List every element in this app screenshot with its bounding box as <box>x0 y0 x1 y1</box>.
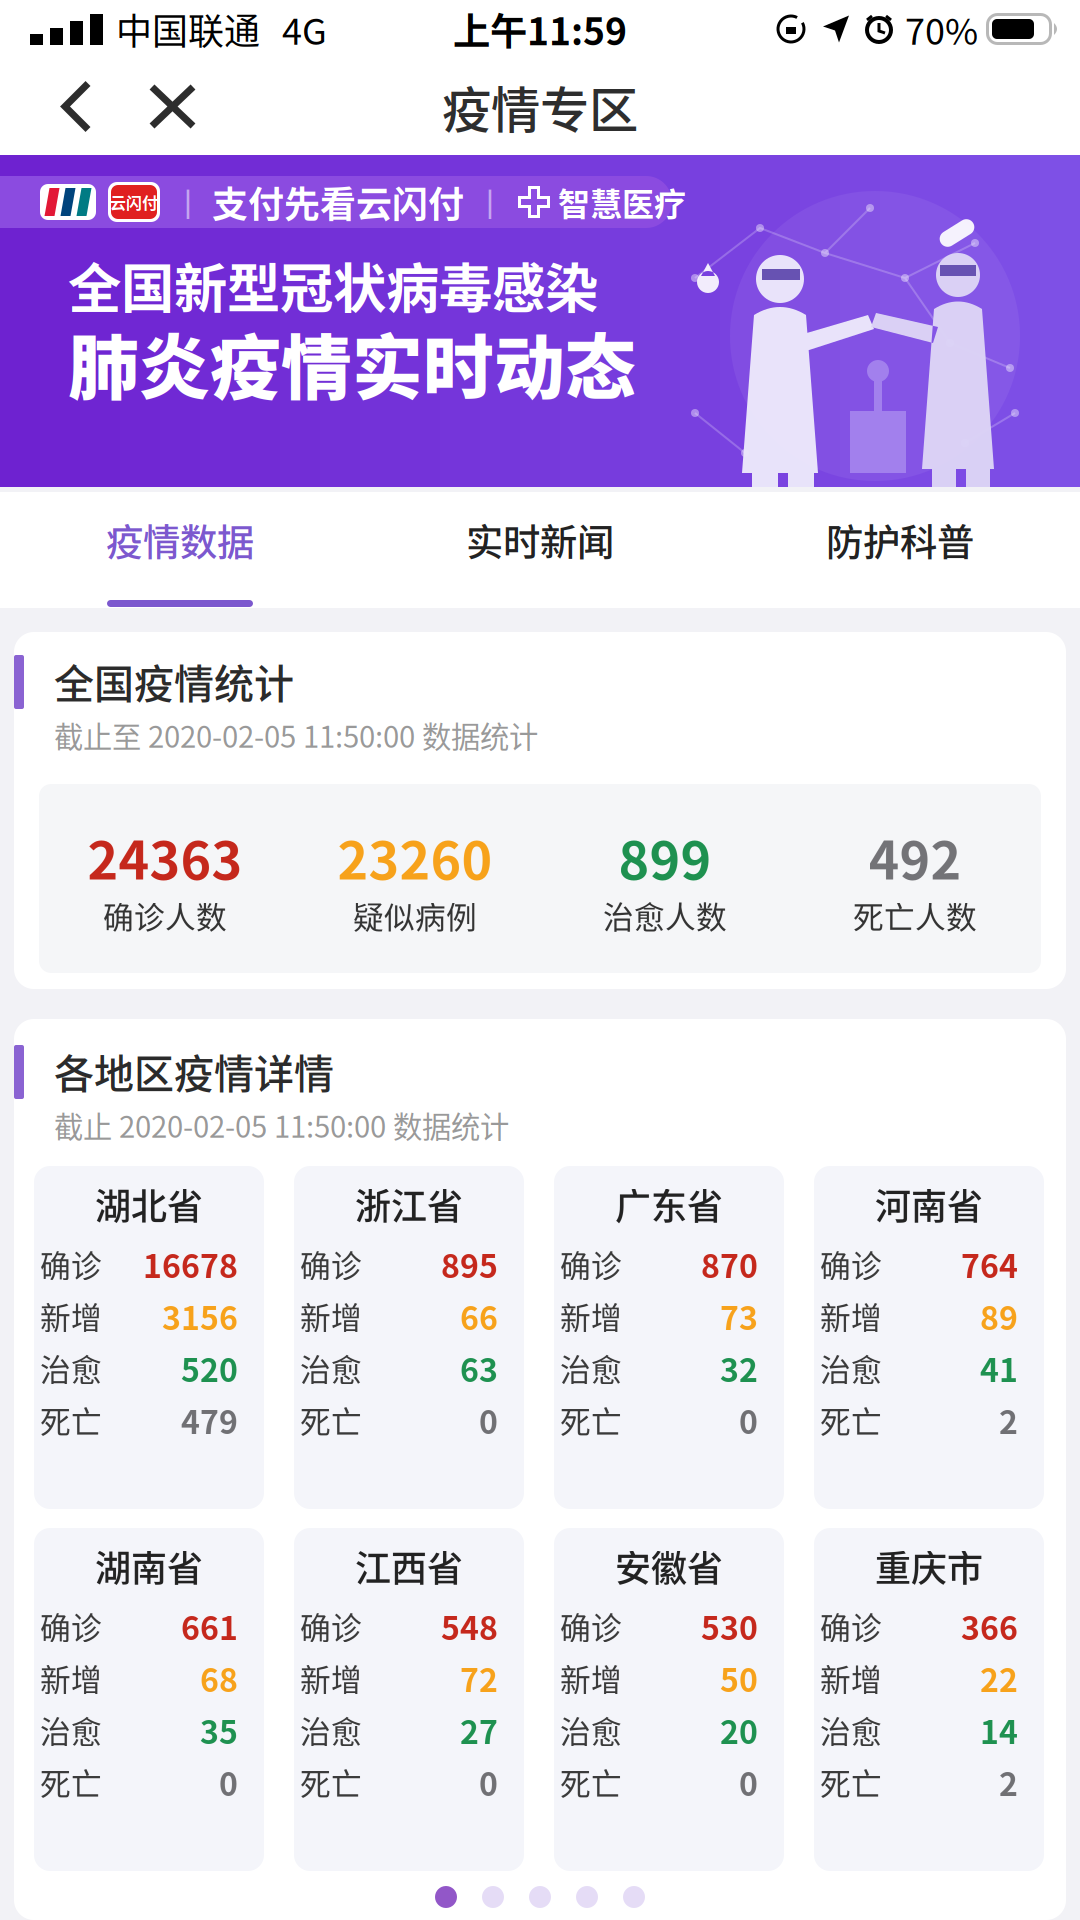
staticText: 截止至 2020-02-05 11:50:00 数据统计 <box>54 714 538 756</box>
staticText: 72 <box>460 1655 498 1701</box>
staticText: 0 <box>739 1397 758 1443</box>
staticText: 新增 <box>820 1656 882 1700</box>
staticText: 治愈人数 <box>603 894 727 937</box>
staticText: 41 <box>980 1345 1018 1391</box>
staticText: 江西省 <box>355 1541 463 1591</box>
staticText: 新增 <box>40 1294 102 1338</box>
staticText: 湖南省 <box>95 1541 203 1591</box>
staticText: 520 <box>181 1345 238 1391</box>
button[interactable]: 实时新闻 <box>360 482 720 598</box>
staticText: 22 <box>980 1655 1018 1701</box>
button[interactable]: 防护科普 <box>720 482 1080 598</box>
staticText: 0 <box>739 1759 758 1805</box>
button[interactable]: 云闪付 <box>0 155 1080 487</box>
staticText: 上午11:59 <box>453 3 627 55</box>
staticText: 2 <box>999 1759 1018 1805</box>
staticText: 661 <box>181 1603 238 1649</box>
staticText: 治愈 <box>300 1346 362 1390</box>
button[interactable]: 疫情数据 <box>0 482 360 598</box>
staticText: 899 <box>618 820 711 893</box>
staticText: 截止 2020-02-05 11:50:00 数据统计 <box>54 1104 509 1146</box>
staticText: 870 <box>701 1241 758 1287</box>
staticText: 治愈 <box>560 1346 622 1390</box>
button[interactable]: 返回 <box>0 60 92 152</box>
staticText: 全国新型冠状病毒感染 <box>68 247 598 323</box>
staticText: 764 <box>961 1241 1018 1287</box>
staticText: 死亡 <box>40 1760 102 1804</box>
staticText: 新增 <box>820 1294 882 1338</box>
staticText: 35 <box>200 1707 238 1753</box>
staticText: 32 <box>720 1345 758 1391</box>
staticText: 新增 <box>300 1656 362 1700</box>
staticText: 死亡 <box>560 1760 622 1804</box>
staticText: 死亡 <box>300 1760 362 1804</box>
staticText: 疫情数据 <box>106 514 254 566</box>
staticText: 治愈 <box>300 1708 362 1752</box>
staticText: 895 <box>441 1241 498 1287</box>
staticText: 湖北省 <box>95 1179 203 1229</box>
staticText: 89 <box>980 1293 1018 1339</box>
staticText: 疫情专区 <box>442 72 638 141</box>
staticText: 治愈 <box>820 1346 882 1390</box>
staticText: 24363 <box>87 820 242 893</box>
staticText: 确诊 <box>560 1604 622 1648</box>
button[interactable]: 关闭 <box>92 61 195 152</box>
staticText: 2 <box>999 1397 1018 1443</box>
staticText: 治愈 <box>40 1708 102 1752</box>
staticText: 广东省 <box>615 1179 723 1229</box>
staticText: 492 <box>868 820 961 893</box>
staticText: 支付先看云闪付 <box>212 177 464 227</box>
staticText: 新增 <box>560 1294 622 1338</box>
staticText: 防护科普 <box>826 514 974 566</box>
staticText: 死亡 <box>300 1398 362 1442</box>
staticText: 治愈 <box>40 1346 102 1390</box>
staticText: 死亡 <box>820 1760 882 1804</box>
staticText: 治愈 <box>820 1708 882 1752</box>
staticText: 确诊 <box>300 1604 362 1648</box>
staticText: 死亡 <box>820 1398 882 1442</box>
staticText: 确诊 <box>560 1242 622 1286</box>
staticText: 50 <box>720 1655 758 1701</box>
staticText: 肺炎疫情实时动态 <box>68 313 636 413</box>
staticText: 479 <box>181 1397 238 1443</box>
staticText: 全国疫情统计 <box>54 653 294 709</box>
staticText: 中国联通 <box>116 4 260 54</box>
staticText: 确诊 <box>40 1604 102 1648</box>
staticText: 确诊 <box>820 1242 882 1286</box>
staticText: 27 <box>460 1707 498 1753</box>
staticText: 63 <box>460 1345 498 1391</box>
staticText: 丨 <box>474 179 506 225</box>
staticText: 确诊人数 <box>103 894 227 937</box>
staticText: 14 <box>980 1707 1018 1753</box>
staticText: 河南省 <box>875 1179 983 1229</box>
staticText: 70% <box>905 4 978 54</box>
staticText: 安徽省 <box>615 1541 723 1591</box>
staticText: 530 <box>701 1603 758 1649</box>
staticText: 3156 <box>162 1293 238 1339</box>
staticText: 死亡 <box>40 1398 102 1442</box>
staticText: 23260 <box>337 820 492 893</box>
staticText: 实时新闻 <box>466 514 614 566</box>
staticText: 新增 <box>40 1656 102 1700</box>
staticText: 治愈 <box>560 1708 622 1752</box>
staticText: 20 <box>720 1707 758 1753</box>
staticText: 确诊 <box>40 1242 102 1286</box>
staticText: 66 <box>460 1293 498 1339</box>
staticText: 重庆市 <box>875 1541 983 1591</box>
staticText: 548 <box>441 1603 498 1649</box>
staticText: 疑似病例 <box>353 894 477 937</box>
staticText: 新增 <box>300 1294 362 1338</box>
staticText: 智慧医疗 <box>558 179 686 225</box>
staticText: 死亡 <box>560 1398 622 1442</box>
staticText: 68 <box>200 1655 238 1701</box>
staticText: 丨 <box>172 179 204 225</box>
staticText: 云闪付 <box>110 191 158 213</box>
staticText: 确诊 <box>300 1242 362 1286</box>
staticText: 死亡人数 <box>853 894 977 937</box>
staticText: 0 <box>219 1759 238 1805</box>
staticText: 0 <box>479 1397 498 1443</box>
staticText: 浙江省 <box>355 1179 463 1229</box>
staticText: 366 <box>961 1603 1018 1649</box>
staticText: 4G <box>282 4 327 54</box>
staticText: 确诊 <box>820 1604 882 1648</box>
